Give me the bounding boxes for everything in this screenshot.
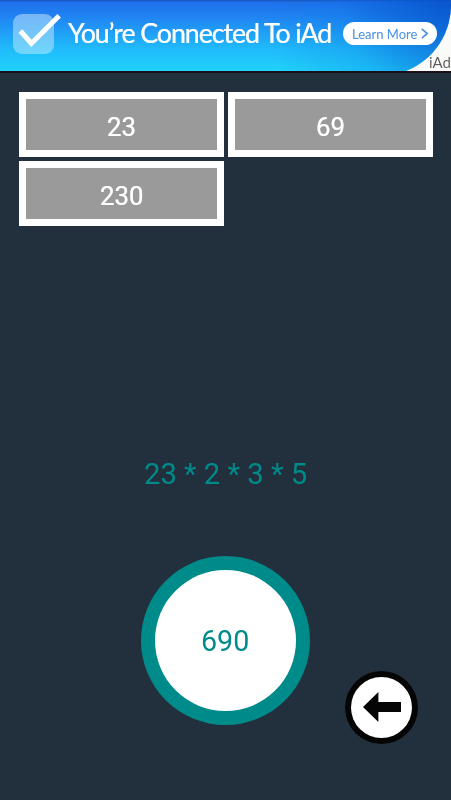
staticText: Learn More: [352, 26, 418, 42]
button[interactable]: 23: [26, 99, 217, 150]
staticText: 690: [201, 624, 250, 658]
staticText: iAd: [429, 53, 451, 71]
staticText: 23 * 2 * 3 * 5: [144, 457, 308, 491]
button[interactable]: Learn More: [343, 22, 437, 45]
staticText: You’re Connected To iAd: [68, 17, 332, 49]
staticText: 23: [107, 112, 136, 142]
button[interactable]: Back: [351, 677, 412, 738]
button[interactable]: 690: [155, 570, 296, 711]
staticText: 230: [100, 181, 144, 211]
staticText: 69: [316, 112, 345, 142]
button[interactable]: 69: [235, 99, 426, 150]
button[interactable]: 230: [26, 168, 217, 219]
